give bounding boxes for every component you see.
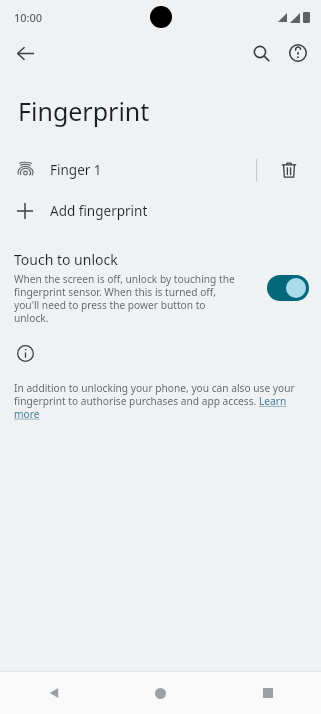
staticText: 10:00 bbox=[14, 10, 43, 25]
button[interactable]: Delete fingerprint bbox=[257, 150, 321, 190]
button[interactable]: Back bbox=[8, 36, 42, 70]
staticText: Finger 1 bbox=[50, 161, 102, 179]
button[interactable]: Touch to unlock toggle bbox=[267, 275, 309, 301]
staticText: Add fingerprint bbox=[50, 202, 148, 220]
button[interactable]: Add fingerprint bbox=[0, 190, 321, 232]
button[interactable]: Help bbox=[281, 36, 315, 70]
staticText: Fingerprint bbox=[18, 94, 150, 128]
button[interactable]: Finger 1 bbox=[0, 150, 321, 190]
button[interactable]: Home bbox=[107, 672, 214, 714]
staticText: Touch to unlock bbox=[14, 250, 118, 269]
staticText: In addition to unlocking your phone, you… bbox=[14, 381, 309, 421]
staticText: When the screen is off, unlock by touchi… bbox=[14, 272, 236, 325]
button[interactable]: Touch to unlock bbox=[0, 250, 321, 325]
button[interactable]: Back bbox=[0, 672, 107, 714]
button[interactable]: Search bbox=[244, 36, 278, 70]
button[interactable]: Recent apps bbox=[214, 672, 321, 714]
